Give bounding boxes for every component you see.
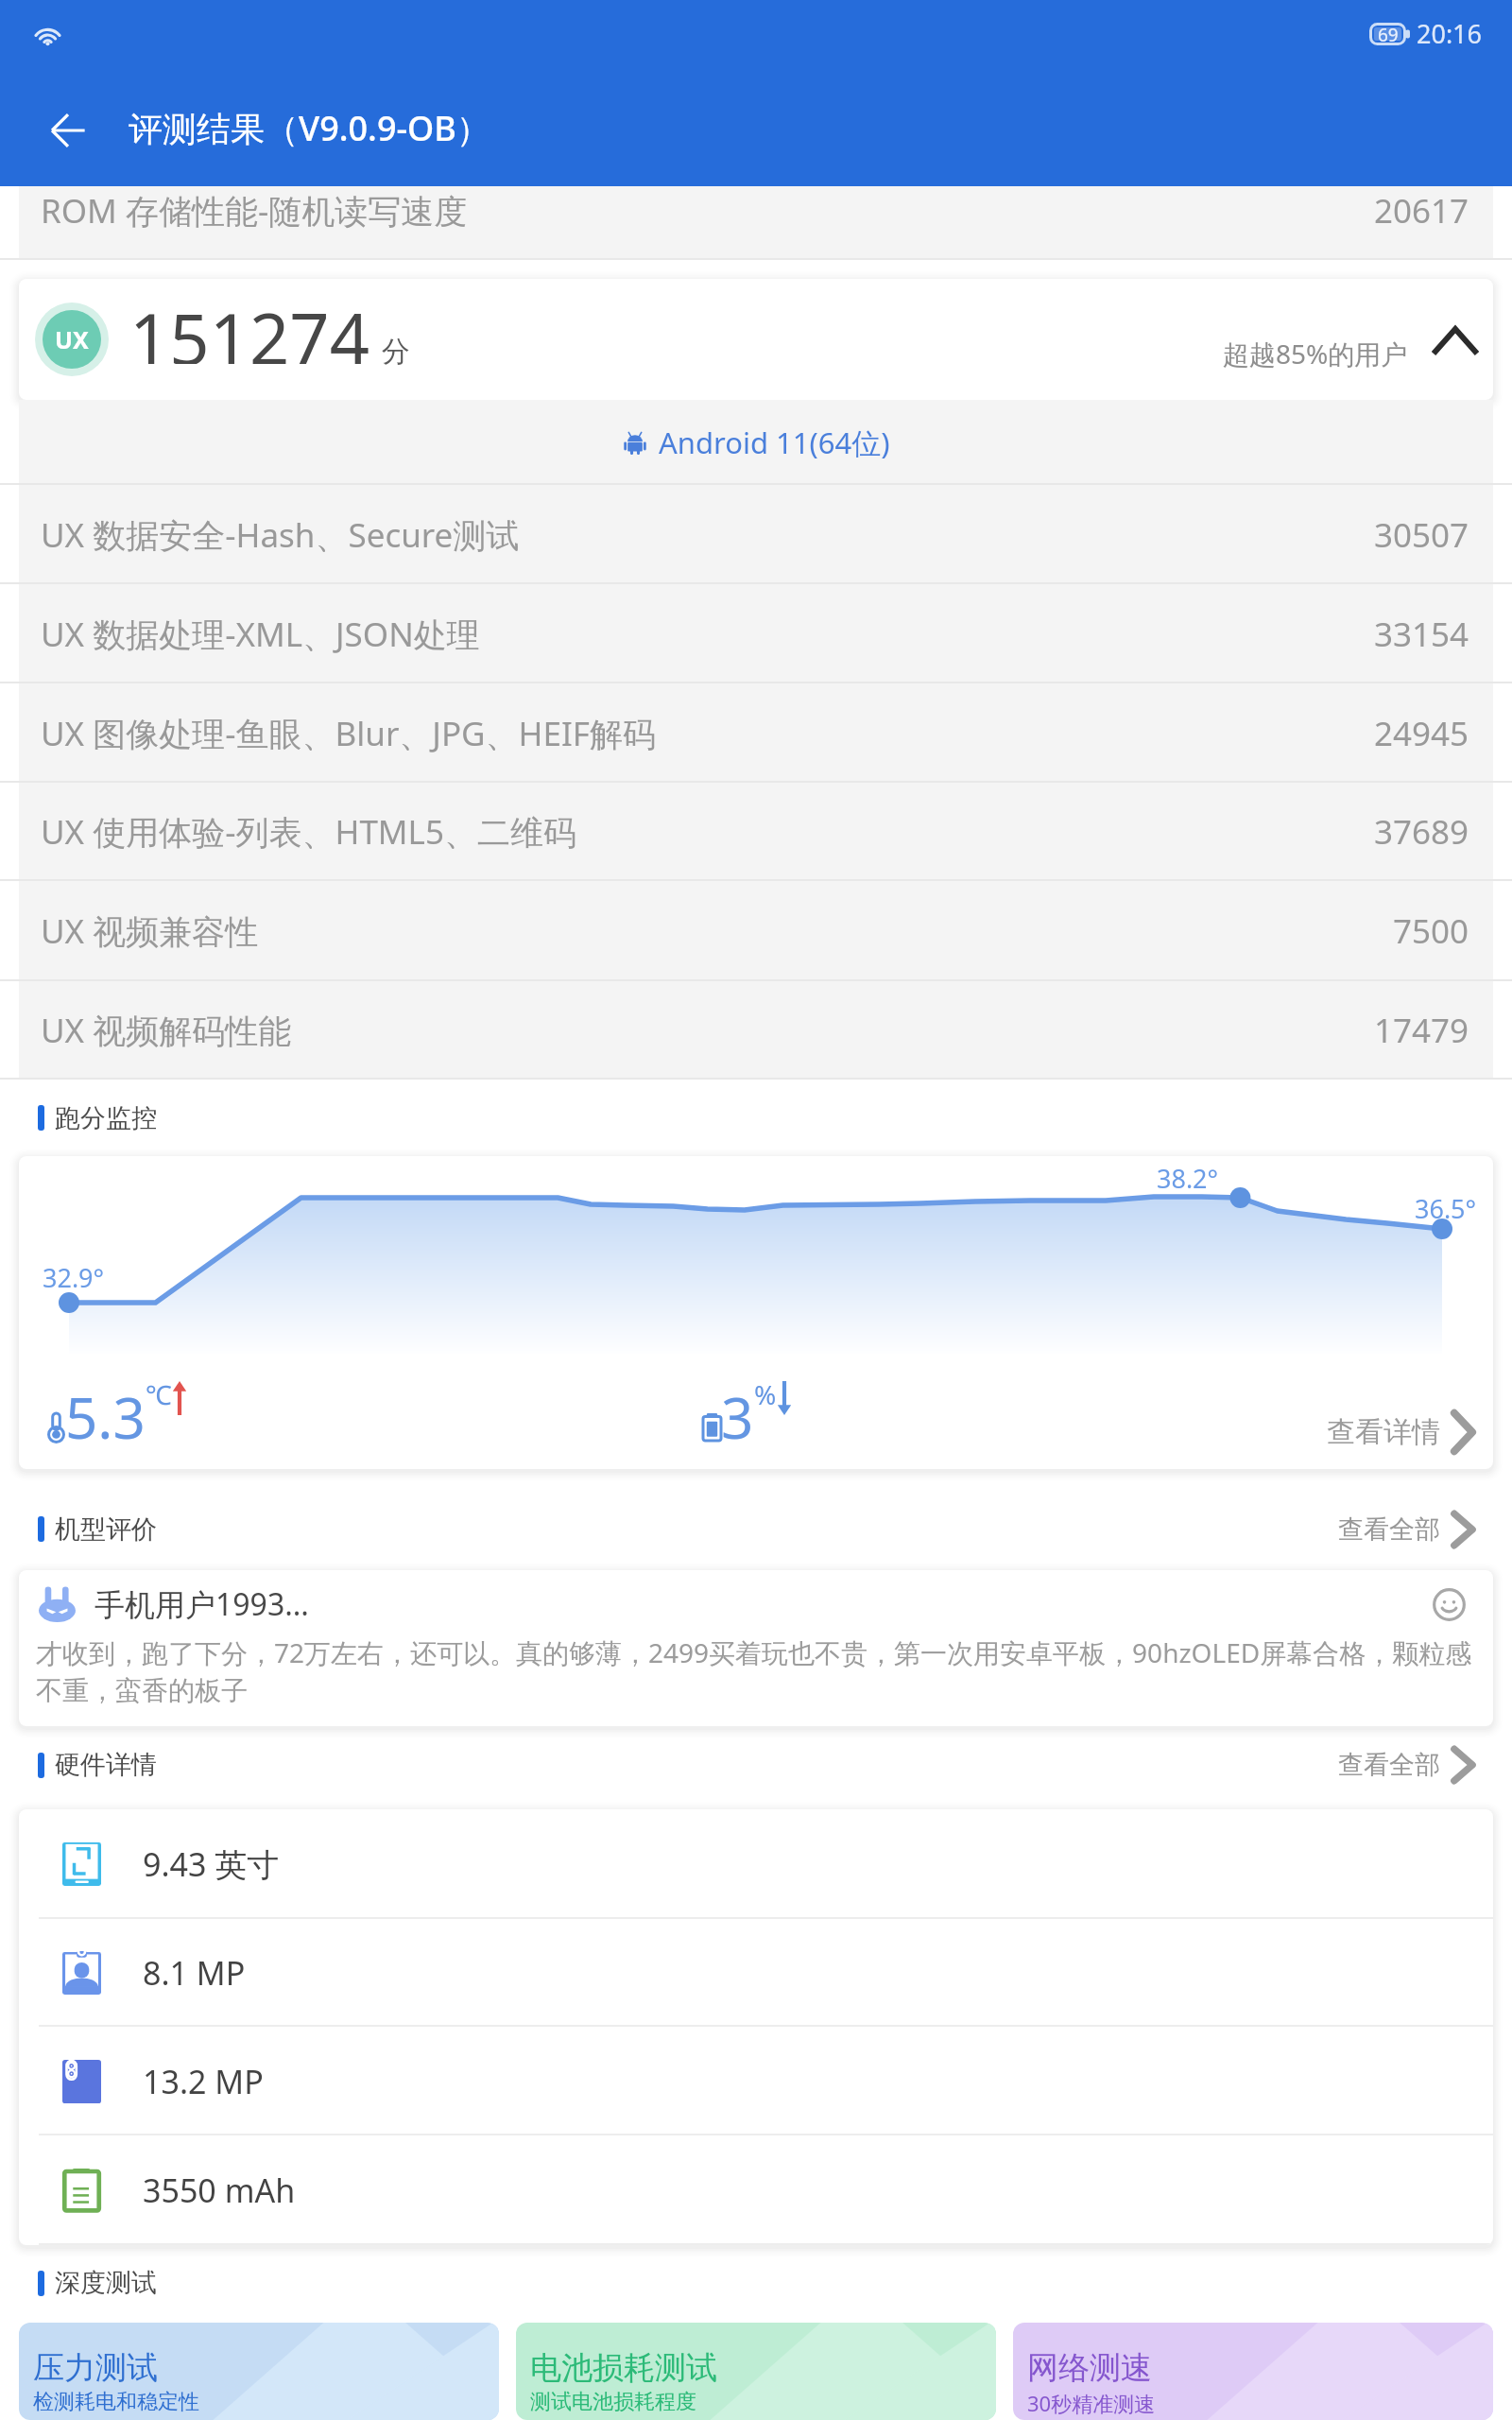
staticText: 手机用户1993... — [94, 1583, 309, 1625]
button[interactable]: UX 数据安全-Hash、Secure测试 — [0, 485, 1512, 584]
button[interactable]: UX 图像处理-鱼眼、Blur、JPG、HEIF解码 — [0, 683, 1512, 783]
staticText: 36.5° — [1415, 1191, 1477, 1226]
staticText: 20617 — [1374, 188, 1469, 233]
staticText: 32.9° — [43, 1260, 105, 1295]
staticText: 网络测速 — [1027, 2348, 1152, 2388]
staticText: 查看全部 — [1338, 1749, 1440, 1781]
staticText: 3 — [721, 1378, 754, 1456]
staticText: 9.43 英寸 — [143, 1842, 280, 1886]
button[interactable]: 查看详情 — [1327, 1380, 1474, 1443]
button[interactable]: 压力测试 — [19, 2323, 499, 2420]
staticText: 8.1 MP — [143, 1951, 246, 1995]
staticText: 38.2° — [1157, 1161, 1219, 1196]
staticText: 24945 — [1374, 711, 1469, 756]
staticText: 20:16 — [1417, 16, 1483, 51]
staticText: UX — [55, 323, 89, 355]
button[interactable]: 查看全部 — [1338, 1739, 1474, 1790]
button[interactable]: Back — [0, 75, 132, 186]
staticText: 才收到，跑了下分，72万左右，还可以。真的够薄，2499买着玩也不贵，第一次用安… — [36, 1634, 1493, 1707]
button[interactable]: UX 使用体验-列表、HTML5、二维码 — [0, 783, 1512, 881]
button[interactable]: ROM 存储性能-随机读写速度 — [0, 186, 1512, 260]
staticText: % — [754, 1376, 777, 1412]
staticText: 电池损耗测试 — [530, 2348, 717, 2388]
staticText: 查看全部 — [1338, 1513, 1440, 1546]
staticText: 测试电池损耗程度 — [530, 2389, 696, 2415]
button[interactable]: UX 视频解码性能 — [0, 981, 1512, 1080]
button[interactable]: 8.1 MP — [19, 1919, 1493, 2027]
staticText: 30507 — [1374, 512, 1469, 558]
button[interactable]: 3550 mAh — [19, 2135, 1493, 2245]
staticText: UX 视频解码性能 — [41, 1008, 292, 1053]
staticText: UX 图像处理-鱼眼、Blur、JPG、HEIF解码 — [41, 711, 656, 756]
staticText: 17479 — [1374, 1008, 1469, 1053]
button[interactable]: 查看全部 — [1338, 1504, 1474, 1555]
staticText: UX 数据处理-XML、JSON处理 — [41, 612, 480, 657]
staticText: 硬件详情 — [55, 1749, 157, 1781]
button[interactable]: 网络测速 — [1013, 2323, 1493, 2420]
staticText: 分 — [382, 334, 410, 370]
staticText: 3550 mAh — [143, 2169, 296, 2212]
staticText: UX 数据安全-Hash、Secure测试 — [41, 512, 520, 558]
staticText: Android 11(64位) — [659, 423, 890, 462]
staticText: 机型评价 — [55, 1513, 157, 1546]
staticText: UX 使用体验-列表、HTML5、二维码 — [41, 809, 576, 855]
staticText: 跑分监控 — [55, 1102, 157, 1134]
staticText: 压力测试 — [33, 2348, 158, 2388]
staticText: ROM 存储性能-随机读写速度 — [41, 188, 468, 233]
staticText: 37689 — [1374, 809, 1469, 855]
button[interactable]: UX 视频兼容性 — [0, 881, 1512, 981]
button[interactable]: UX 数据处理-XML、JSON处理 — [0, 584, 1512, 683]
staticText: 深度测试 — [55, 2267, 157, 2299]
staticText: UX 视频兼容性 — [41, 908, 259, 954]
staticText: 查看详情 — [1327, 1414, 1440, 1450]
button[interactable]: 9.43 英寸 — [19, 1809, 1493, 1919]
staticText: 33154 — [1374, 612, 1469, 657]
button[interactable]: 手机用户1993... — [19, 1570, 1493, 1726]
staticText: 69 — [1378, 23, 1399, 45]
staticText: 7500 — [1393, 908, 1469, 954]
staticText: 5.3 — [65, 1378, 146, 1456]
staticText: ℃ — [146, 1376, 172, 1412]
staticText: 30秒精准测速 — [1027, 2389, 1156, 2417]
staticText: 评测结果（V9.0.9-OB） — [129, 105, 490, 151]
staticText: 13.2 MP — [143, 2060, 264, 2103]
staticText: 151274 — [129, 290, 369, 364]
button[interactable]: 13.2 MP — [19, 2027, 1493, 2135]
staticText: 检测耗电和稳定性 — [33, 2389, 199, 2415]
button[interactable]: UX — [19, 279, 1493, 400]
staticText: 超越85%的用户 — [1223, 336, 1408, 372]
button[interactable]: 电池损耗测试 — [516, 2323, 996, 2420]
